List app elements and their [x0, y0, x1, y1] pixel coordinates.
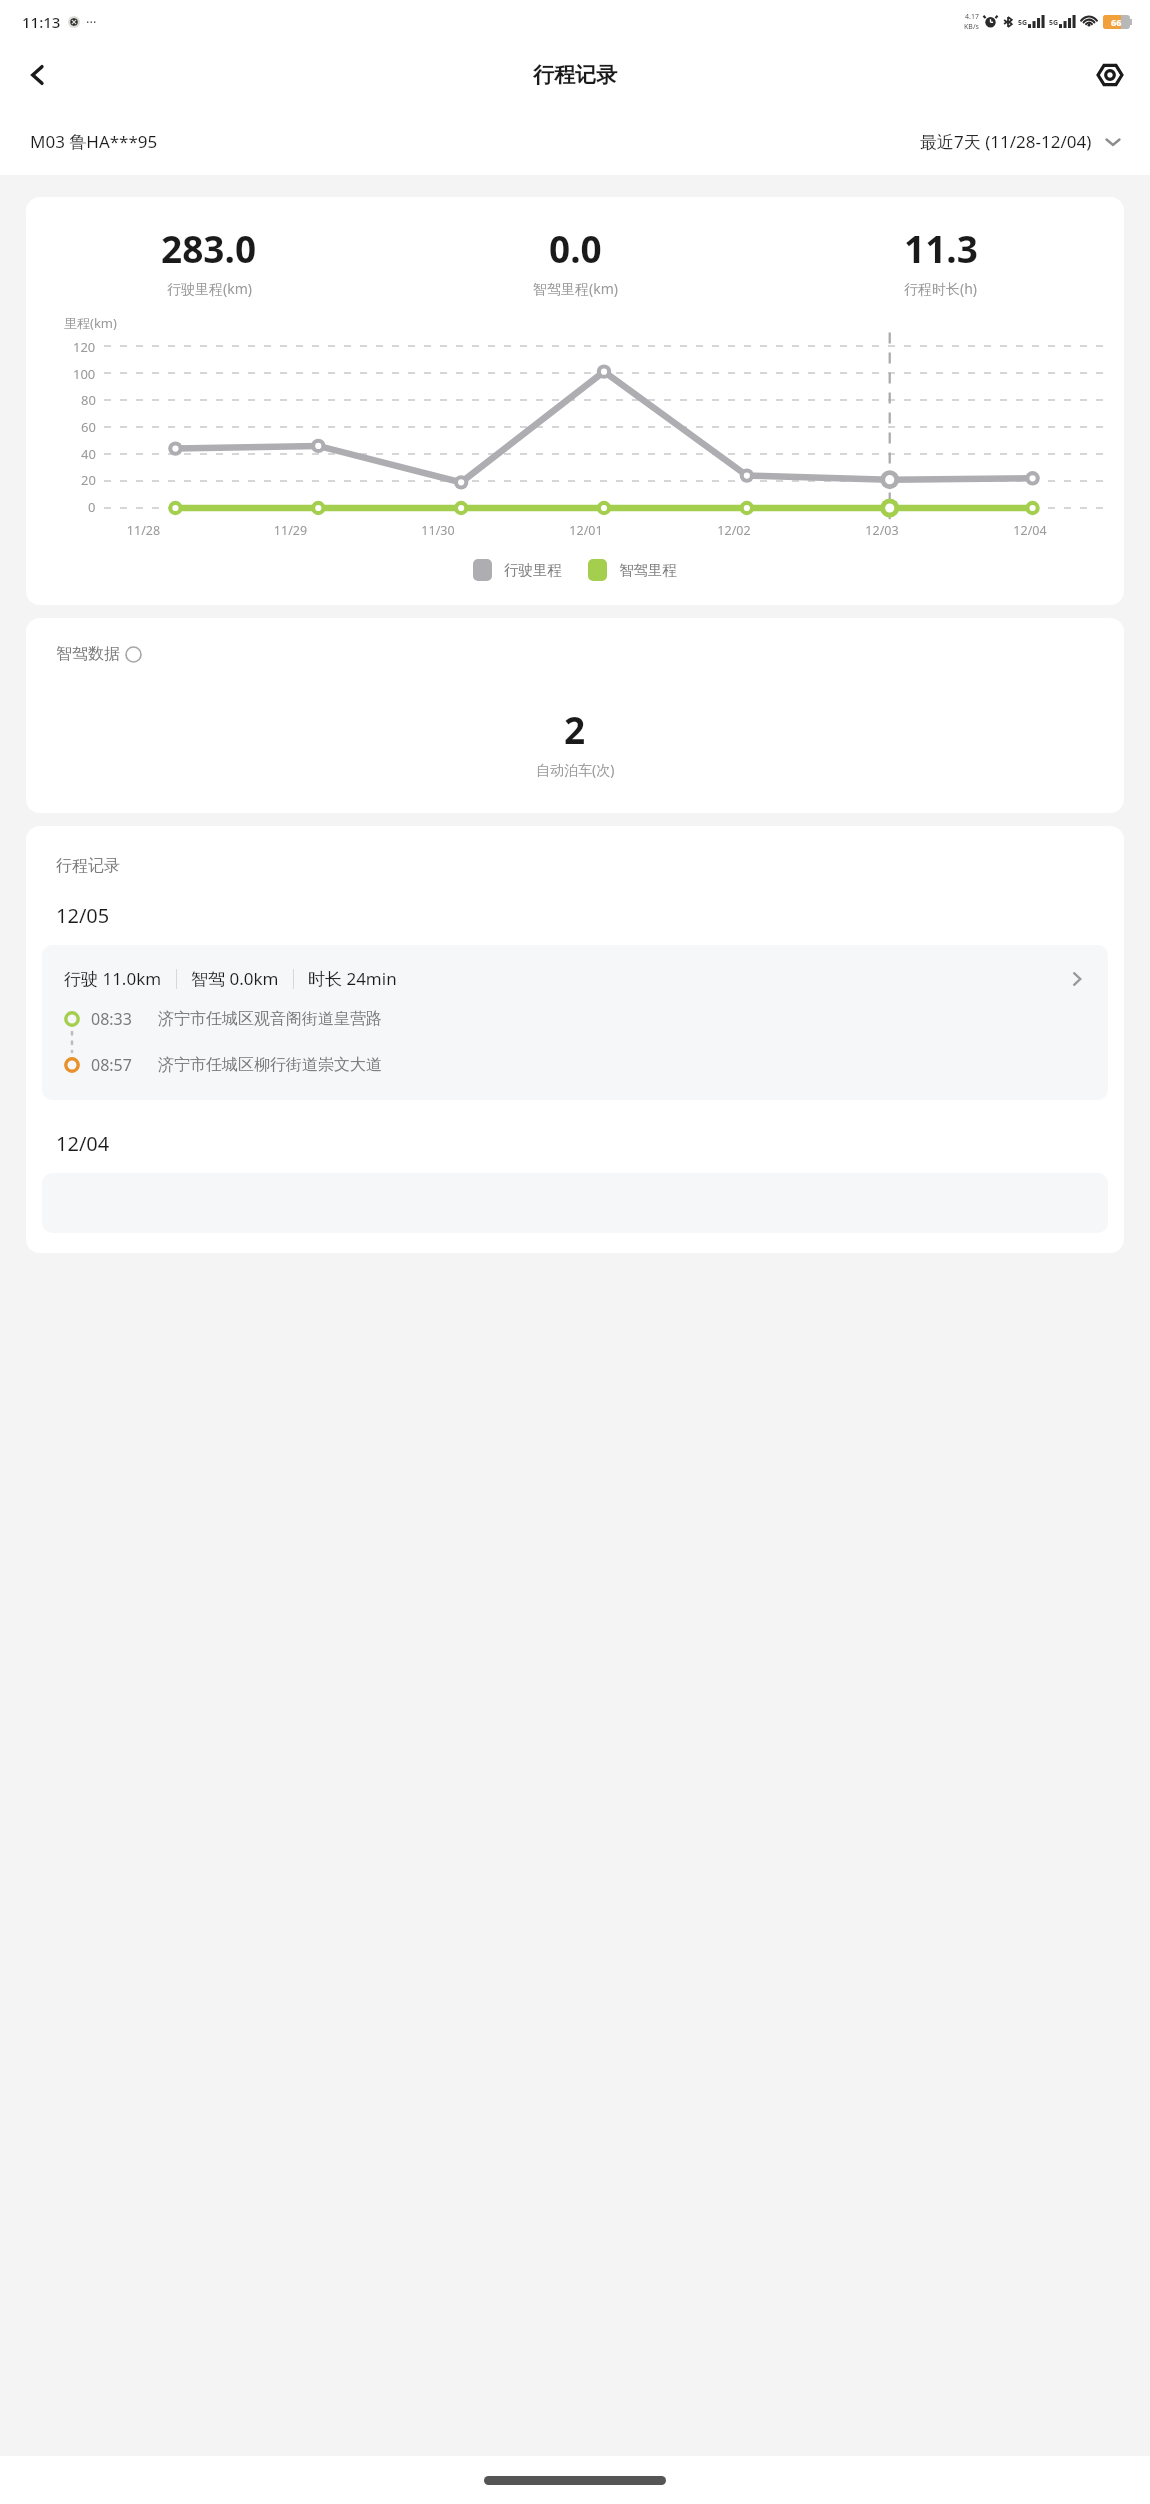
- staticText: 行程时长(h): [904, 279, 978, 298]
- button[interactable]: 最近7天 (11/28-12/04): [920, 130, 1122, 153]
- staticText: 12/01: [512, 522, 660, 539]
- staticText: 行驶里程: [504, 561, 562, 579]
- staticText: 最近7天 (11/28-12/04): [920, 130, 1092, 153]
- button[interactable]: 智驾数据: [56, 644, 142, 664]
- staticText: 2: [564, 704, 586, 754]
- staticText: 5G: [1049, 18, 1059, 28]
- staticText: 100: [73, 365, 96, 383]
- button[interactable]: Back: [10, 47, 66, 103]
- staticText: 11.3: [904, 223, 978, 273]
- staticText: 12/03: [808, 522, 956, 539]
- staticText: 0: [88, 498, 96, 516]
- staticText: 4.17: [965, 12, 979, 22]
- staticText: 12/04: [956, 522, 1104, 539]
- staticText: 时长 24min: [308, 967, 397, 990]
- staticText: 0.0: [549, 223, 602, 273]
- button[interactable]: 行驶 11.0km: [42, 945, 1108, 1100]
- staticText: 智驾 0.0km: [191, 967, 279, 990]
- staticText: 自动泊车(次): [536, 760, 615, 779]
- button[interactable]: Settings: [1082, 47, 1138, 103]
- staticText: 283.0: [161, 223, 257, 273]
- staticText: 5G: [1018, 18, 1028, 28]
- staticText: 智驾里程(km): [533, 279, 618, 298]
- staticText: 里程(km): [64, 314, 117, 332]
- staticText: 66: [1111, 16, 1122, 28]
- staticText: M03 鲁HA***95: [30, 130, 158, 153]
- staticText: 120: [73, 338, 96, 356]
- staticText: KB/s: [964, 22, 979, 32]
- staticText: 11/30: [364, 522, 512, 539]
- staticText: 12/04: [56, 1130, 110, 1157]
- staticText: 08:33: [91, 1008, 132, 1030]
- staticText: 11:13: [22, 12, 61, 32]
- staticText: 智驾数据: [56, 644, 120, 664]
- staticText: ···: [86, 13, 97, 31]
- staticText: 行驶里程(km): [167, 279, 252, 298]
- staticText: 60: [81, 418, 96, 436]
- staticText: 行程记录: [533, 62, 617, 88]
- staticText: 行驶 11.0km: [64, 967, 162, 990]
- staticText: 08:57: [91, 1054, 132, 1076]
- staticText: 济宁市任城区柳行街道崇文大道: [158, 1055, 382, 1075]
- staticText: 12/05: [56, 902, 110, 929]
- staticText: 40: [81, 445, 96, 463]
- staticText: 智驾里程: [619, 561, 677, 579]
- staticText: 12/02: [660, 522, 808, 539]
- staticText: 行程记录: [56, 856, 120, 876]
- staticText: 济宁市任城区观音阁街道皇营路: [158, 1009, 382, 1029]
- staticText: 80: [81, 391, 96, 409]
- staticText: 11/28: [70, 522, 217, 539]
- staticText: 11/29: [217, 522, 364, 539]
- staticText: 20: [81, 471, 96, 489]
